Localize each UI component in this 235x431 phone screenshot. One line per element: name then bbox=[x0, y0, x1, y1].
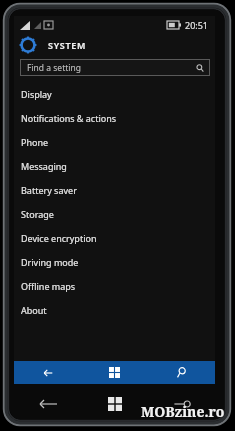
staticText: Notifications & actions bbox=[21, 112, 117, 124]
staticText: About bbox=[21, 304, 47, 316]
button[interactable]: Start key bbox=[81, 392, 148, 416]
button[interactable]: Search bbox=[148, 361, 215, 384]
staticText: Battery saver bbox=[21, 184, 77, 196]
staticText: Driving mode bbox=[21, 256, 79, 268]
button[interactable]: About bbox=[14, 298, 215, 322]
staticText: Phone bbox=[21, 136, 49, 148]
staticText: Storage bbox=[21, 208, 54, 220]
button[interactable]: Back bbox=[14, 361, 81, 384]
button[interactable]: Phone bbox=[14, 130, 215, 154]
button[interactable]: Messaging bbox=[14, 154, 215, 178]
staticText: 20:51 bbox=[185, 19, 209, 31]
button[interactable]: Device encryption bbox=[14, 226, 215, 250]
button[interactable]: Driving mode bbox=[14, 250, 215, 274]
button[interactable]: Battery saver bbox=[14, 178, 215, 202]
button[interactable]: Notifications & actions bbox=[14, 106, 215, 130]
staticText: Device encryption bbox=[21, 232, 97, 244]
staticText: Find a setting bbox=[27, 62, 81, 74]
button[interactable]: Back key bbox=[14, 392, 81, 416]
staticText: MOBzine.ro bbox=[141, 402, 225, 421]
button[interactable]: Offline maps bbox=[14, 274, 215, 298]
button[interactable]: Find a setting bbox=[20, 59, 210, 76]
staticText: Offline maps bbox=[21, 280, 76, 292]
button[interactable]: Storage bbox=[14, 202, 215, 226]
button[interactable]: Start bbox=[81, 361, 148, 384]
staticText: Display bbox=[21, 88, 52, 100]
button[interactable]: Display bbox=[14, 82, 215, 106]
staticText: Messaging bbox=[21, 160, 67, 172]
button[interactable]: Search key bbox=[148, 392, 215, 416]
staticText: SYSTEM bbox=[48, 39, 87, 51]
